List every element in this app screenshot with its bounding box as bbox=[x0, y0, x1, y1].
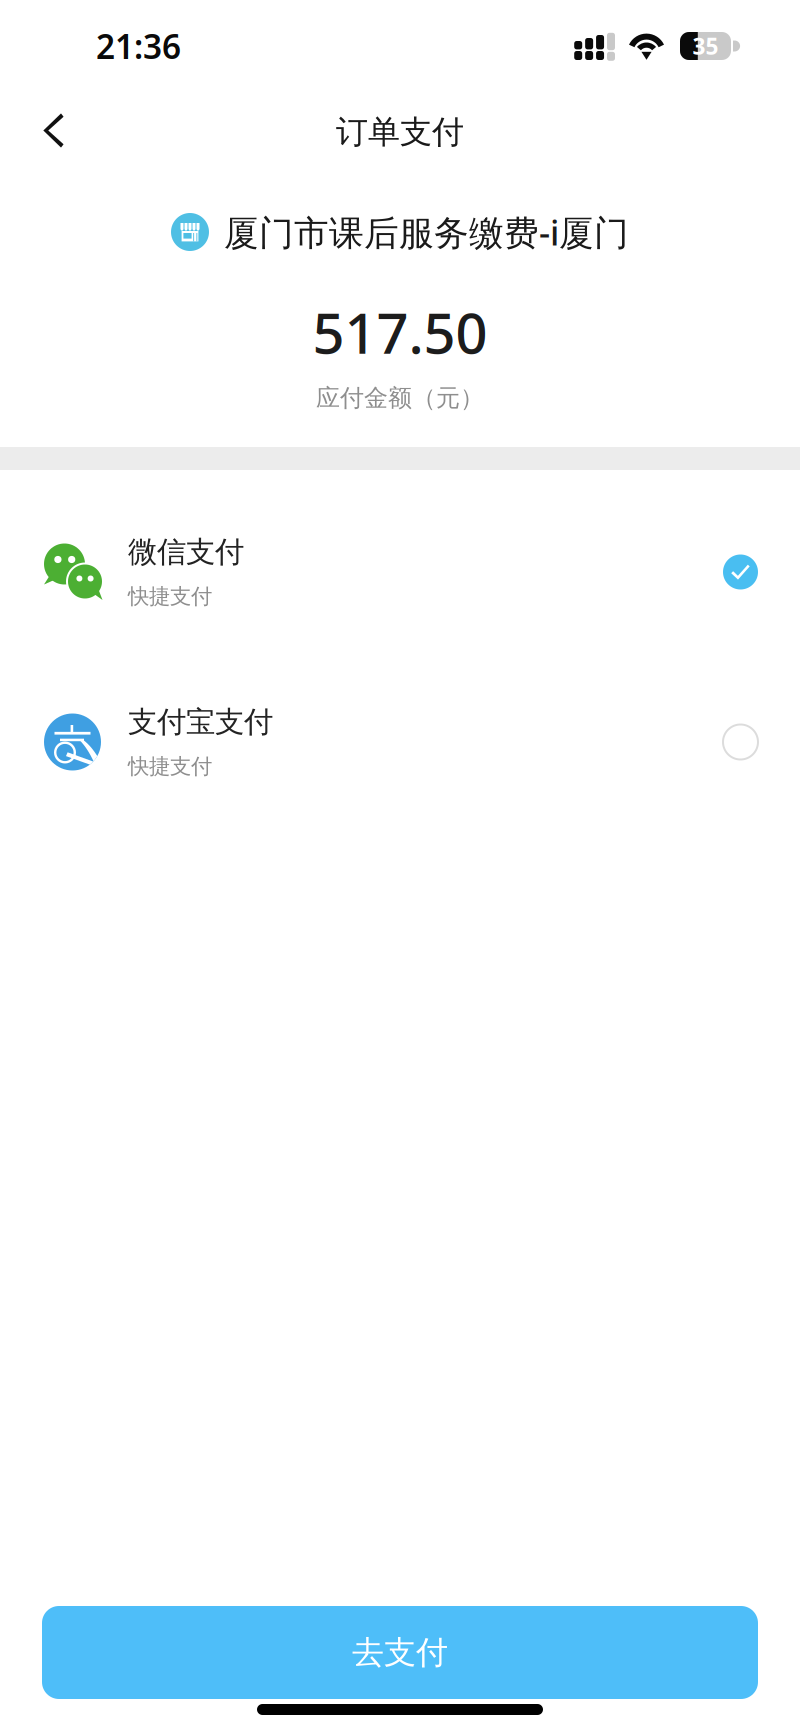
staticText: 微信支付 bbox=[128, 534, 244, 570]
staticText: 厦门市课后服务缴费-i厦门 bbox=[224, 209, 629, 255]
staticText: 去支付 bbox=[352, 1633, 448, 1672]
button[interactable]: 返回 bbox=[0, 92, 98, 172]
staticText: 35 bbox=[692, 31, 718, 61]
staticText: 快捷支付 bbox=[128, 583, 212, 610]
button[interactable]: 微信支付 bbox=[0, 487, 800, 657]
staticText: 应付金额（元） bbox=[316, 383, 484, 413]
button[interactable]: 去支付 bbox=[42, 1606, 758, 1699]
staticText: 快捷支付 bbox=[128, 753, 212, 780]
staticText: 21:36 bbox=[96, 24, 181, 68]
staticText: 517.50 bbox=[312, 295, 487, 369]
button[interactable]: 支付宝支付 bbox=[0, 657, 800, 827]
staticText: 订单支付 bbox=[336, 112, 464, 152]
staticText: 支付宝支付 bbox=[128, 704, 273, 740]
